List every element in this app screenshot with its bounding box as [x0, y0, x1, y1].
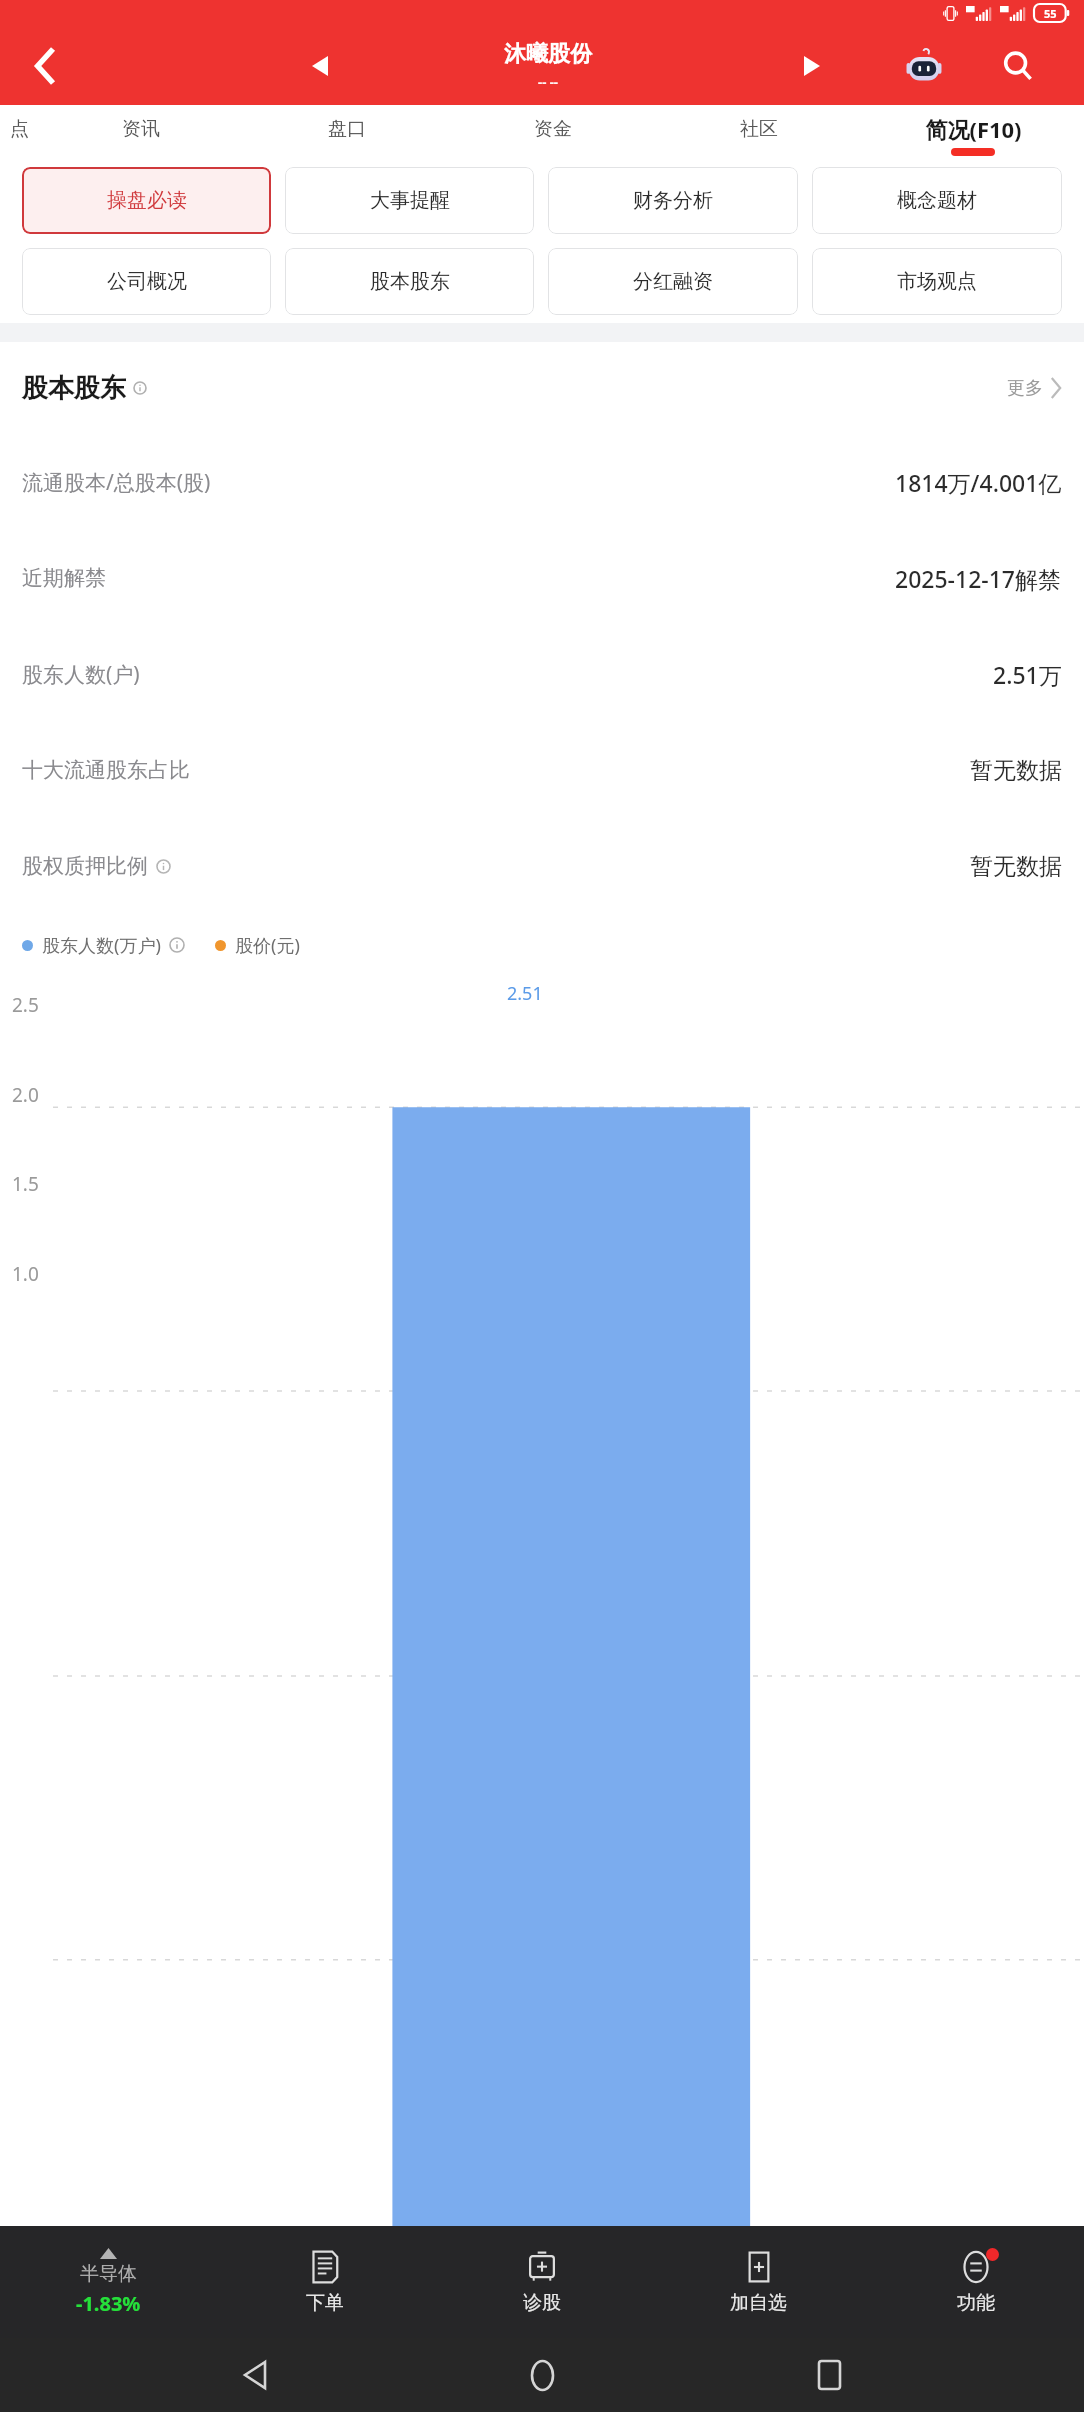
- button[interactable]: Back: [223, 2343, 287, 2407]
- staticText: 2.0: [12, 1082, 39, 1108]
- button[interactable]: 股本股东: [285, 248, 534, 315]
- button[interactable]: Search: [992, 40, 1044, 92]
- staticText: 股权质押比例: [22, 853, 148, 879]
- button[interactable]: 诊股: [433, 2226, 650, 2338]
- staticText: 股本股东: [22, 372, 126, 405]
- staticText: 1.0: [12, 1261, 39, 1287]
- staticText: 2.51: [507, 981, 543, 1006]
- staticText: 1.5: [12, 1171, 39, 1197]
- button[interactable]: 财务分析: [548, 167, 798, 234]
- button[interactable]: 概念题材: [812, 167, 1062, 234]
- button[interactable]: 公司概况: [22, 248, 271, 315]
- button[interactable]: 功能: [867, 2226, 1084, 2338]
- button[interactable]: 市场观点: [812, 248, 1062, 315]
- button[interactable]: 加自选: [650, 2226, 867, 2338]
- staticText: 更多: [1007, 377, 1043, 400]
- staticText: 暂无数据: [970, 756, 1062, 785]
- staticText: 加自选: [730, 2291, 787, 2315]
- staticText: 资讯: [122, 117, 160, 141]
- button[interactable]: 操盘必读: [22, 167, 271, 234]
- button[interactable]: Back: [18, 38, 74, 94]
- staticText: 暂无数据: [970, 852, 1062, 881]
- staticText: 下单: [306, 2291, 344, 2315]
- button[interactable]: 股本股东: [22, 342, 1062, 434]
- staticText: 2.5: [12, 992, 39, 1018]
- button[interactable]: Recents: [797, 2343, 861, 2407]
- staticText: 社区: [740, 117, 778, 141]
- staticText: 2.51万: [993, 659, 1062, 690]
- staticText: 半导体: [80, 2262, 137, 2286]
- button[interactable]: 点: [0, 105, 38, 159]
- staticText: -1.83%: [76, 2290, 141, 2317]
- button[interactable]: 社区: [656, 105, 862, 159]
- staticText: 分红融资: [633, 269, 713, 294]
- staticText: 概念题材: [897, 188, 977, 213]
- staticText: 55: [1044, 6, 1057, 21]
- button[interactable]: 流通股本/总股本(股): [22, 434, 1062, 530]
- staticText: 诊股: [523, 2291, 561, 2315]
- staticText: 股东人数(户): [22, 660, 140, 689]
- button[interactable]: Next stock: [788, 42, 836, 90]
- staticText: 大事提醒: [370, 188, 450, 213]
- button[interactable]: 半导体: [0, 2226, 216, 2338]
- staticText: 市场观点: [897, 269, 977, 294]
- button[interactable]: 股权质押比例: [22, 818, 1062, 914]
- staticText: 2025-12-17解禁: [895, 563, 1062, 594]
- button[interactable]: Home: [510, 2343, 574, 2407]
- button[interactable]: 大事提醒: [285, 167, 534, 234]
- staticText: 股东人数(万户): [42, 933, 161, 958]
- button[interactable]: 盘口: [244, 105, 450, 159]
- staticText: 盘口: [328, 117, 366, 141]
- button[interactable]: 下单: [216, 2226, 433, 2338]
- staticText: 近期解禁: [22, 565, 106, 591]
- button[interactable]: 资金: [450, 105, 656, 159]
- button[interactable]: 分红融资: [548, 248, 798, 315]
- staticText: 十大流通股东占比: [22, 757, 190, 783]
- staticText: 股价(元): [235, 933, 300, 958]
- staticText: 股本股东: [370, 269, 450, 294]
- staticText: 1814万/4.001亿: [895, 467, 1062, 498]
- staticText: 操盘必读: [107, 188, 187, 213]
- button[interactable]: 十大流通股东占比: [22, 722, 1062, 818]
- button[interactable]: 股东人数(户): [22, 626, 1062, 722]
- staticText: 点: [10, 117, 29, 141]
- staticText: -- --: [538, 73, 559, 91]
- staticText: 功能: [957, 2291, 995, 2315]
- staticText: 资金: [534, 117, 572, 141]
- button[interactable]: 简况(F10): [862, 105, 1084, 159]
- button[interactable]: Previous stock: [296, 42, 344, 90]
- button[interactable]: 近期解禁: [22, 530, 1062, 626]
- staticText: 简况(F10): [925, 114, 1022, 144]
- staticText: 财务分析: [633, 188, 713, 213]
- staticText: 公司概况: [107, 269, 187, 294]
- button[interactable]: 资讯: [38, 105, 244, 159]
- staticText: 流通股本/总股本(股): [22, 468, 211, 497]
- button[interactable]: AI assistant: [898, 40, 950, 92]
- staticText: 沐曦股份: [504, 40, 592, 68]
